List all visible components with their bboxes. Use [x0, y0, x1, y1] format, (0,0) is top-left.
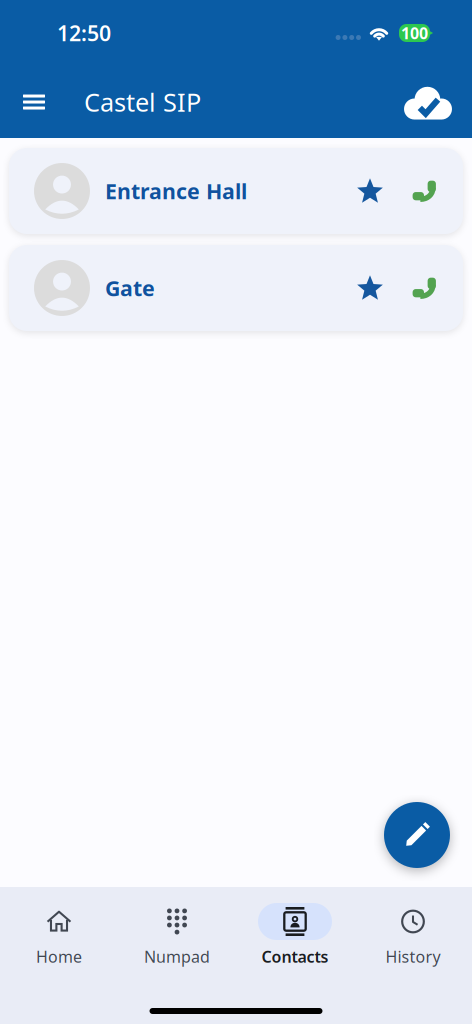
- staticText: Home: [36, 946, 82, 967]
- button[interactable]: Menu: [11, 75, 57, 129]
- staticText: Contacts: [261, 946, 328, 967]
- button[interactable]: Favorite: [341, 164, 399, 218]
- staticText: History: [385, 946, 440, 967]
- button[interactable]: Favorite: [341, 261, 399, 315]
- button[interactable]: Call: [399, 164, 449, 218]
- button[interactable]: Entrance Hall: [9, 148, 463, 234]
- staticText: 100: [401, 22, 428, 44]
- button[interactable]: Compose: [384, 802, 450, 868]
- button[interactable]: Connection status: [401, 75, 455, 129]
- staticText: Entrance Hall: [105, 177, 247, 205]
- button[interactable]: Gate: [9, 245, 463, 331]
- staticText: Numpad: [144, 946, 210, 967]
- button[interactable]: Home: [0, 887, 118, 1007]
- button[interactable]: Numpad: [118, 887, 236, 1007]
- staticText: Gate: [105, 274, 155, 302]
- button[interactable]: Contacts: [236, 887, 354, 1007]
- staticText: Castel SIP: [84, 85, 201, 119]
- staticText: 12:50: [57, 19, 111, 47]
- button[interactable]: History: [354, 887, 472, 1007]
- button[interactable]: Call: [399, 261, 449, 315]
